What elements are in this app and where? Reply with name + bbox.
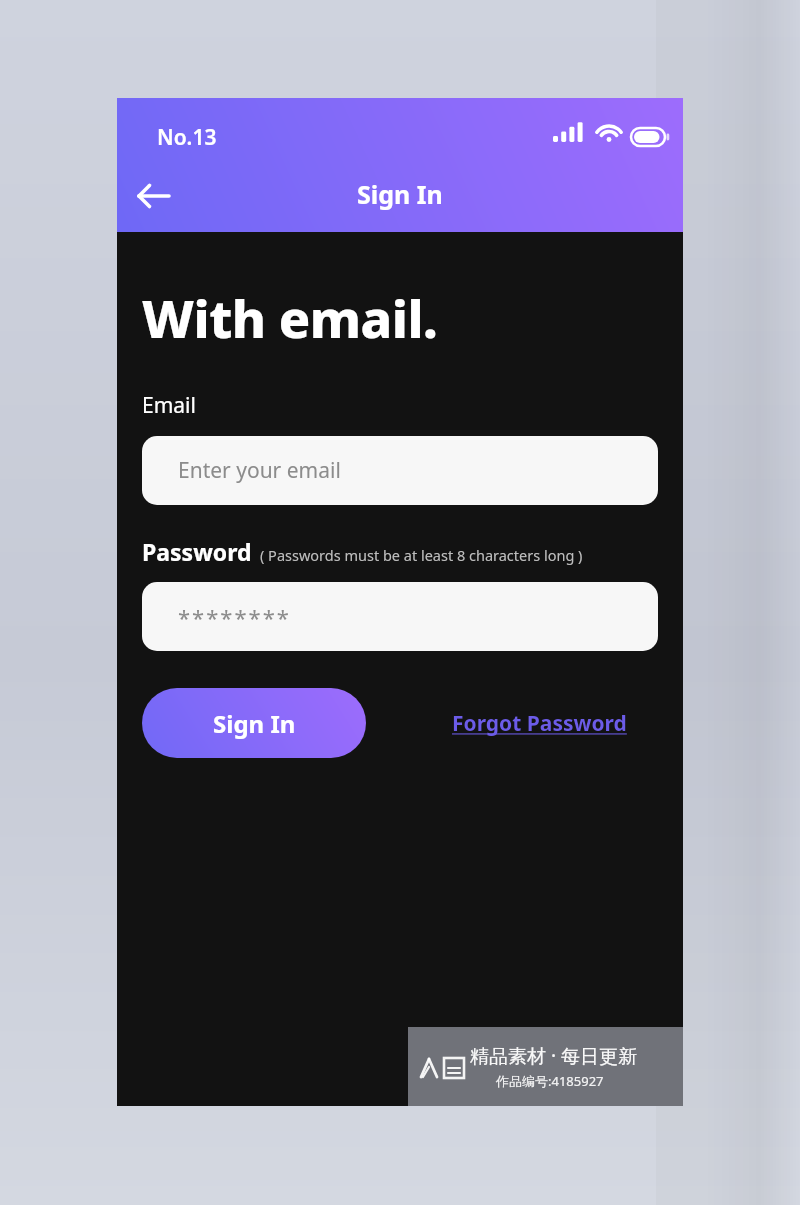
button[interactable]: Sign In bbox=[142, 688, 366, 758]
staticText: Password bbox=[142, 536, 252, 567]
button[interactable]: Forgot Password bbox=[452, 709, 627, 738]
button[interactable]: Enter your email bbox=[142, 436, 658, 505]
staticText: ******** bbox=[178, 602, 291, 632]
button[interactable]: ******** bbox=[142, 582, 658, 651]
staticText: Sign In bbox=[357, 177, 443, 211]
staticText: With email. bbox=[142, 282, 438, 353]
staticText: 精品素材 · 每日更新 bbox=[470, 1043, 637, 1069]
staticText: Email bbox=[142, 391, 196, 420]
staticText: No.13 bbox=[157, 123, 217, 152]
button[interactable]: Back bbox=[129, 171, 179, 221]
staticText: Enter your email bbox=[178, 456, 341, 485]
staticText: 作品编号:4185927 bbox=[496, 1072, 604, 1090]
staticText: Forgot Password bbox=[452, 709, 627, 738]
staticText: ( Passwords must be at least 8 character… bbox=[260, 545, 583, 565]
staticText: Sign In bbox=[213, 707, 296, 740]
